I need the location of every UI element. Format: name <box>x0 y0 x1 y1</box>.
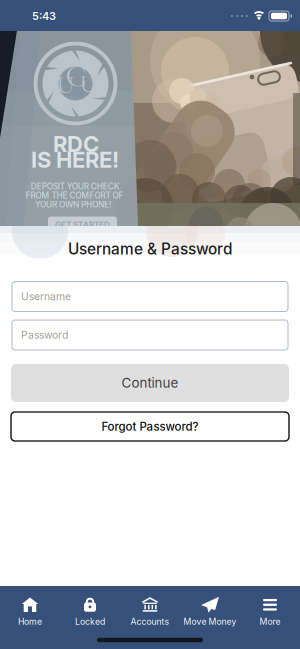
staticText: U <box>56 70 74 100</box>
staticText: GET STARTED <box>55 220 110 229</box>
staticText: YOUR OWN PHONE! <box>35 199 112 209</box>
button[interactable]: GET STARTED <box>48 216 117 232</box>
staticText: 5:43 <box>32 9 56 23</box>
button[interactable]: Continue <box>11 364 289 402</box>
staticText: Username & Password <box>68 240 232 258</box>
staticText: U <box>79 69 97 99</box>
staticText: Username <box>21 290 71 303</box>
staticText: Accounts <box>130 616 169 627</box>
textField[interactable]: Username <box>21 290 288 303</box>
staticText: Password <box>21 329 68 341</box>
staticText: Locked <box>75 616 105 627</box>
staticText: IS HERE! <box>31 146 119 173</box>
staticText: Forgot Password? <box>101 420 198 433</box>
staticText: More <box>259 616 280 627</box>
button[interactable]: Forgot Password? <box>11 412 289 441</box>
button[interactable]: Move Money <box>180 597 240 627</box>
secureTextField[interactable]: Password <box>21 329 288 341</box>
staticText: DEPOSIT YOUR CHECK <box>31 181 120 191</box>
staticText: Move Money <box>183 616 236 627</box>
staticText: Home <box>18 616 42 627</box>
button[interactable]: More <box>240 597 300 627</box>
staticText: Continue <box>121 375 178 391</box>
button[interactable]: Home <box>0 597 60 627</box>
button[interactable]: Locked <box>60 597 120 627</box>
button[interactable]: Accounts <box>120 597 180 627</box>
staticText: RDC <box>53 131 99 157</box>
staticText: FROM THE COMFORT OF <box>25 190 123 200</box>
staticText: C <box>65 58 86 95</box>
